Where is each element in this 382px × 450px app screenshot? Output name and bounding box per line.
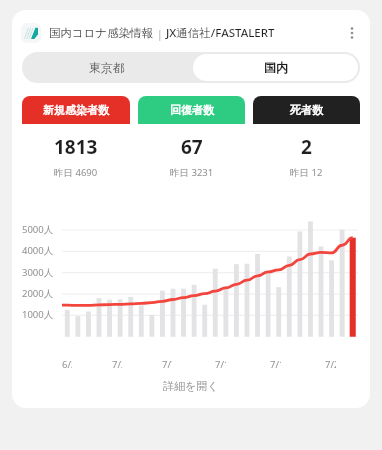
- button[interactable]: 死者数: [253, 96, 360, 188]
- staticText: 回復者数: [170, 103, 214, 117]
- staticText: 7/12: [215, 358, 226, 371]
- button[interactable]: More options: [338, 19, 366, 47]
- staticText: 7/22: [325, 358, 336, 371]
- staticText: 3000人: [22, 266, 54, 279]
- button[interactable]: 国内: [193, 54, 358, 81]
- staticText: 1000人: [22, 308, 54, 321]
- staticText: 7/7: [162, 358, 172, 371]
- staticText: 新規感染者数: [43, 103, 109, 117]
- staticText: 4000人: [22, 244, 54, 257]
- button[interactable]: 回復者数: [138, 96, 245, 188]
- staticText: |: [154, 26, 166, 41]
- staticText: 詳細を開く: [163, 379, 219, 393]
- button[interactable]: 新規感染者数: [22, 96, 130, 188]
- button[interactable]: 詳細を開く: [12, 372, 370, 400]
- staticText: 国内: [264, 60, 288, 75]
- staticText: 7/17: [270, 358, 281, 371]
- staticText: 7/2: [112, 358, 122, 371]
- staticText: 2000人: [22, 287, 54, 300]
- staticText: 昨日 4690: [54, 166, 98, 179]
- staticText: 6/27: [62, 358, 72, 371]
- staticText: 東京都: [89, 60, 125, 75]
- staticText: 1813: [54, 134, 98, 160]
- staticText: JX通信社/FASTALERT: [166, 25, 275, 41]
- staticText: 死者数: [290, 103, 323, 117]
- staticText: 昨日 3231: [170, 166, 214, 179]
- staticText: 国内コロナ感染情報: [49, 26, 154, 40]
- staticText: 昨日 12: [290, 166, 323, 179]
- button[interactable]: 東京都: [22, 52, 191, 83]
- staticText: 2: [301, 134, 312, 160]
- staticText: 5000人: [22, 223, 54, 236]
- staticText: 67: [181, 134, 203, 160]
